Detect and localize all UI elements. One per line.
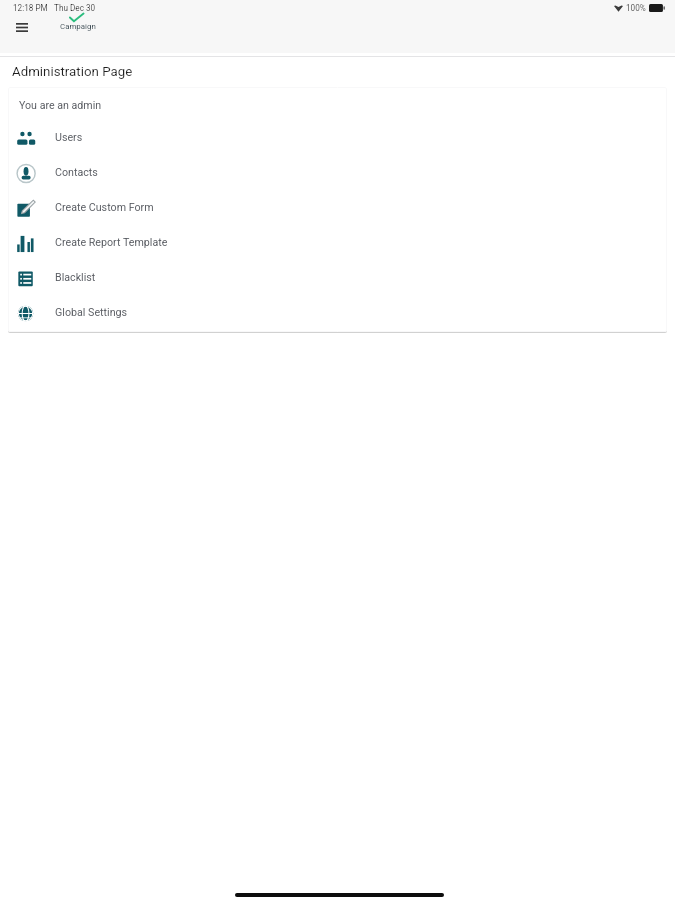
button[interactable]: Blacklist	[8, 261, 667, 296]
staticText: 100%	[626, 3, 646, 13]
button[interactable]: Create Custom Form	[8, 191, 667, 226]
button[interactable]: Contacts	[8, 156, 667, 191]
staticText: Global Settings	[55, 306, 128, 319]
staticText: You are an admin	[19, 99, 102, 111]
staticText: Campaign	[60, 22, 96, 31]
staticText: Thu Dec 30	[54, 3, 96, 13]
staticText: Users	[55, 131, 83, 144]
staticText: Contacts	[55, 166, 98, 179]
button[interactable]: Open navigation menu	[6, 14, 37, 41]
button[interactable]: Users	[8, 121, 667, 156]
staticText: Administration Page	[12, 64, 133, 80]
staticText: Create Report Template	[55, 236, 168, 249]
button[interactable]: Global Settings	[8, 296, 667, 331]
staticText: Create Custom Form	[55, 201, 154, 214]
staticText: 12:18 PM	[13, 3, 48, 13]
button[interactable]: Create Report Template	[8, 226, 667, 261]
button[interactable]: Campaign home	[56, 10, 100, 34]
staticText: Blacklist	[55, 271, 96, 284]
